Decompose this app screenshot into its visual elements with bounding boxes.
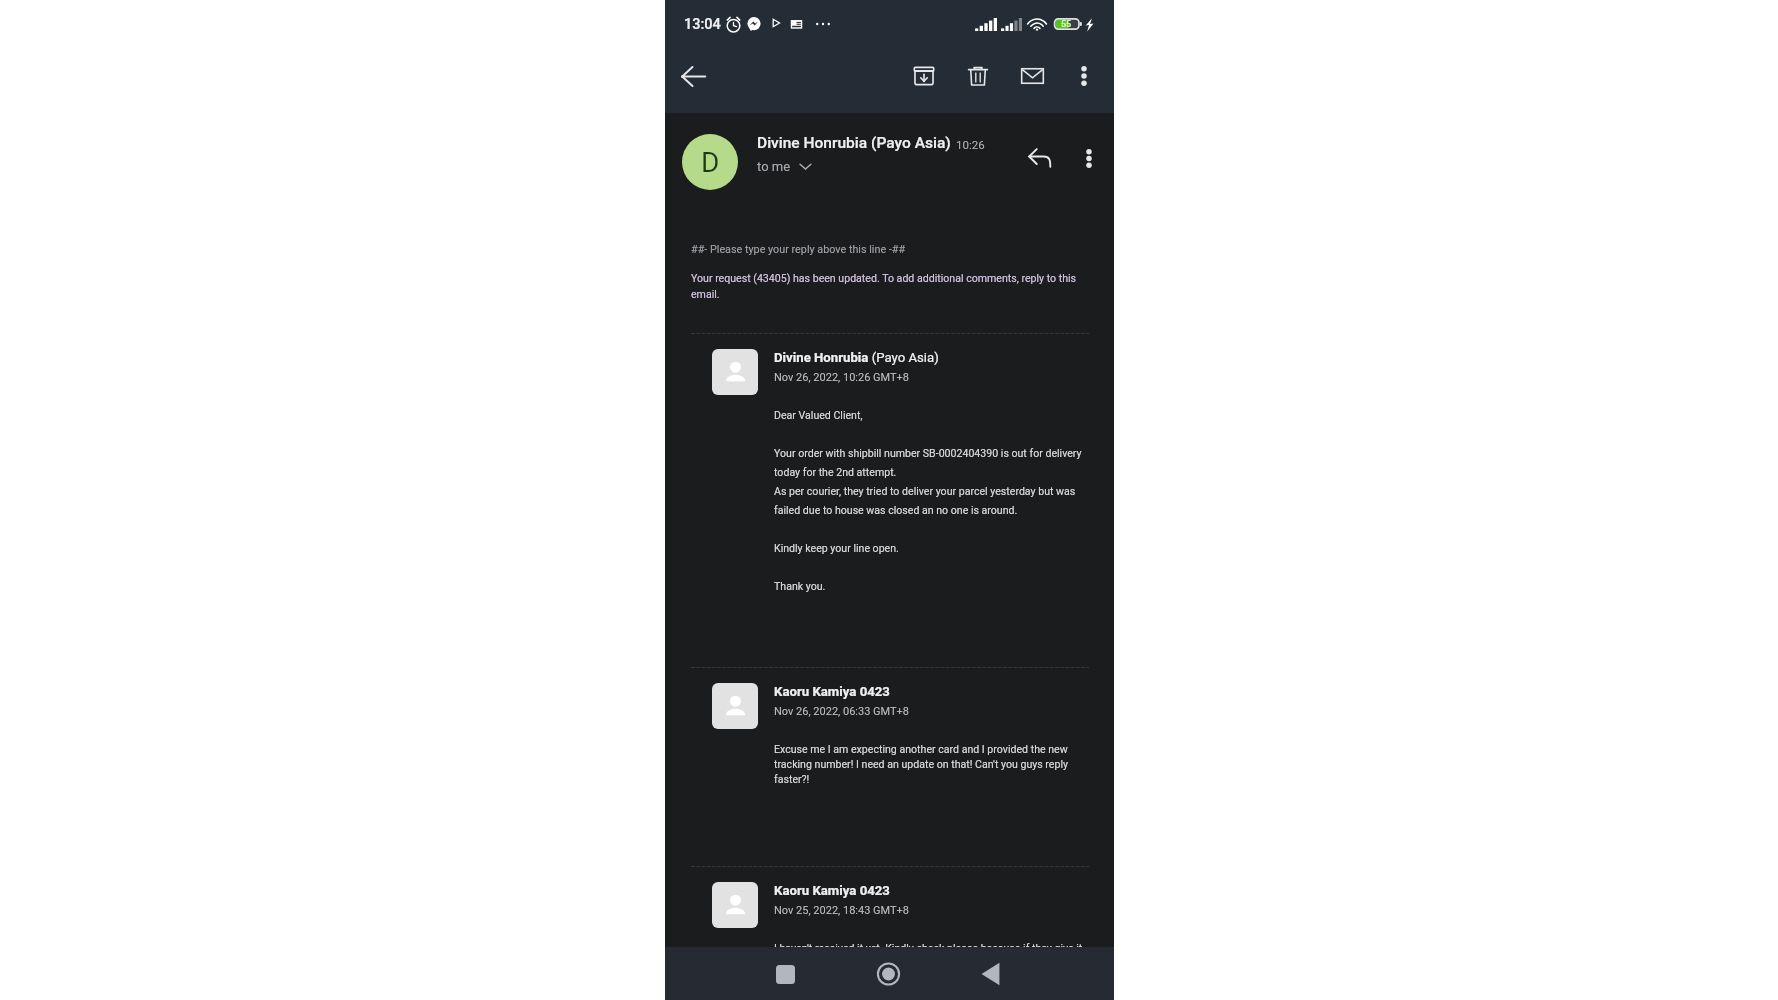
staticText: Divine Honrubia (Payo Asia) — [774, 350, 939, 365]
staticText: to me — [757, 159, 791, 174]
button[interactable]: Navigate up — [665, 48, 721, 104]
staticText: 10:26 — [956, 138, 985, 151]
button[interactable]: Recent apps — [759, 948, 811, 1000]
button[interactable]: Reply — [1023, 134, 1069, 180]
staticText: Nov 26, 2022, 10:26 GMT+8 — [774, 371, 910, 384]
staticText: Kaoru Kamiya 0423 — [774, 684, 890, 699]
button[interactable]: D — [665, 113, 1114, 211]
button[interactable]: Back — [964, 948, 1016, 1000]
staticText: Kaoru Kamiya 0423 — [774, 883, 890, 898]
staticText: ##- Please type your reply above this li… — [691, 243, 906, 256]
staticText: D — [701, 146, 720, 179]
button[interactable]: Mark as unread — [1005, 49, 1059, 103]
staticText: Your request (43405) has been updated. T… — [691, 272, 1089, 300]
staticText: Excuse me I am expecting another card an… — [774, 743, 1089, 786]
staticText: 13:04 — [684, 16, 721, 33]
button[interactable]: More options — [1069, 138, 1109, 178]
staticText: Nov 25, 2022, 18:43 GMT+8 — [774, 904, 910, 917]
staticText: I haven't received it yet. Kindly check … — [774, 942, 1083, 947]
staticText: 55 — [1061, 19, 1072, 30]
button[interactable]: Home — [862, 948, 914, 1000]
staticText: Dear Valued Client, Your order with ship… — [774, 409, 1089, 593]
button[interactable]: More options — [1059, 51, 1108, 100]
staticText: Nov 26, 2022, 06:33 GMT+8 — [774, 705, 910, 718]
staticText: Divine Honrubia (Payo Asia) — [757, 134, 951, 152]
button[interactable]: Archive — [897, 49, 951, 103]
button[interactable]: Delete — [951, 49, 1005, 103]
